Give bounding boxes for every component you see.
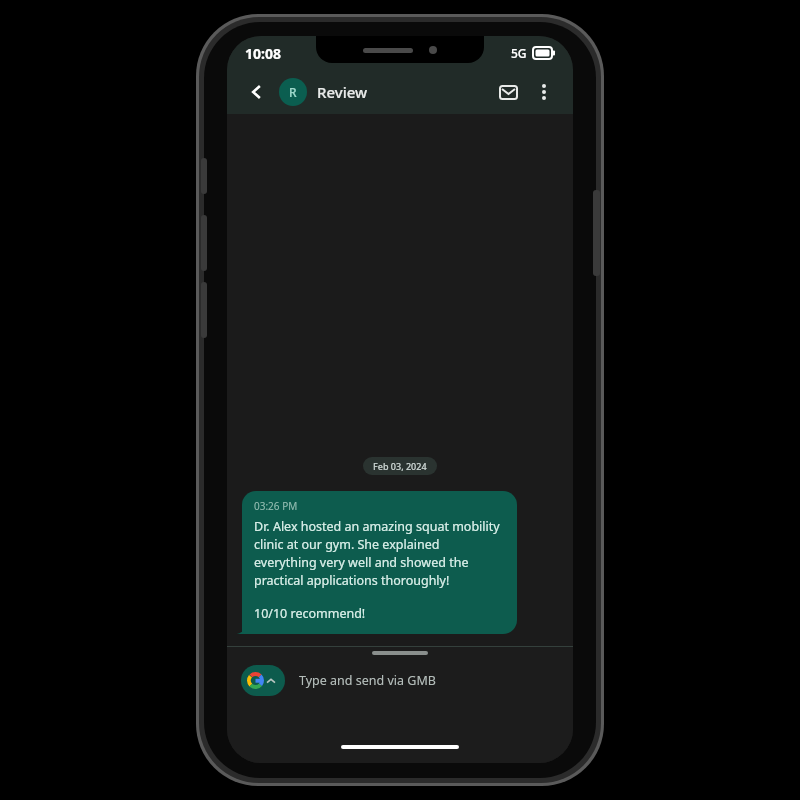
button[interactable]: Review <box>317 82 368 102</box>
button[interactable]: More options <box>527 75 561 109</box>
button[interactable]: Choose sender <box>241 665 285 696</box>
button[interactable]: Type and send via GMB <box>299 672 559 689</box>
staticText: Feb 03, 2024 <box>373 460 427 472</box>
staticText: 10/10 recommend! <box>254 605 366 622</box>
staticText: 5G <box>511 45 527 61</box>
button[interactable]: 03:26 PM <box>242 491 517 634</box>
staticText: 10:08 <box>245 44 281 63</box>
staticText: Dr. Alex hosted an amazing squat mobilit… <box>254 518 505 589</box>
button[interactable]: Messages <box>491 75 525 109</box>
staticText: R <box>289 84 297 100</box>
staticText: Review <box>317 82 368 102</box>
button[interactable]: Back <box>239 74 275 110</box>
button[interactable]: Feb 03, 2024 <box>363 457 437 475</box>
staticText: 03:26 PM <box>254 499 298 513</box>
staticText: Type and send via GMB <box>299 672 436 689</box>
button[interactable]: R <box>279 78 307 106</box>
